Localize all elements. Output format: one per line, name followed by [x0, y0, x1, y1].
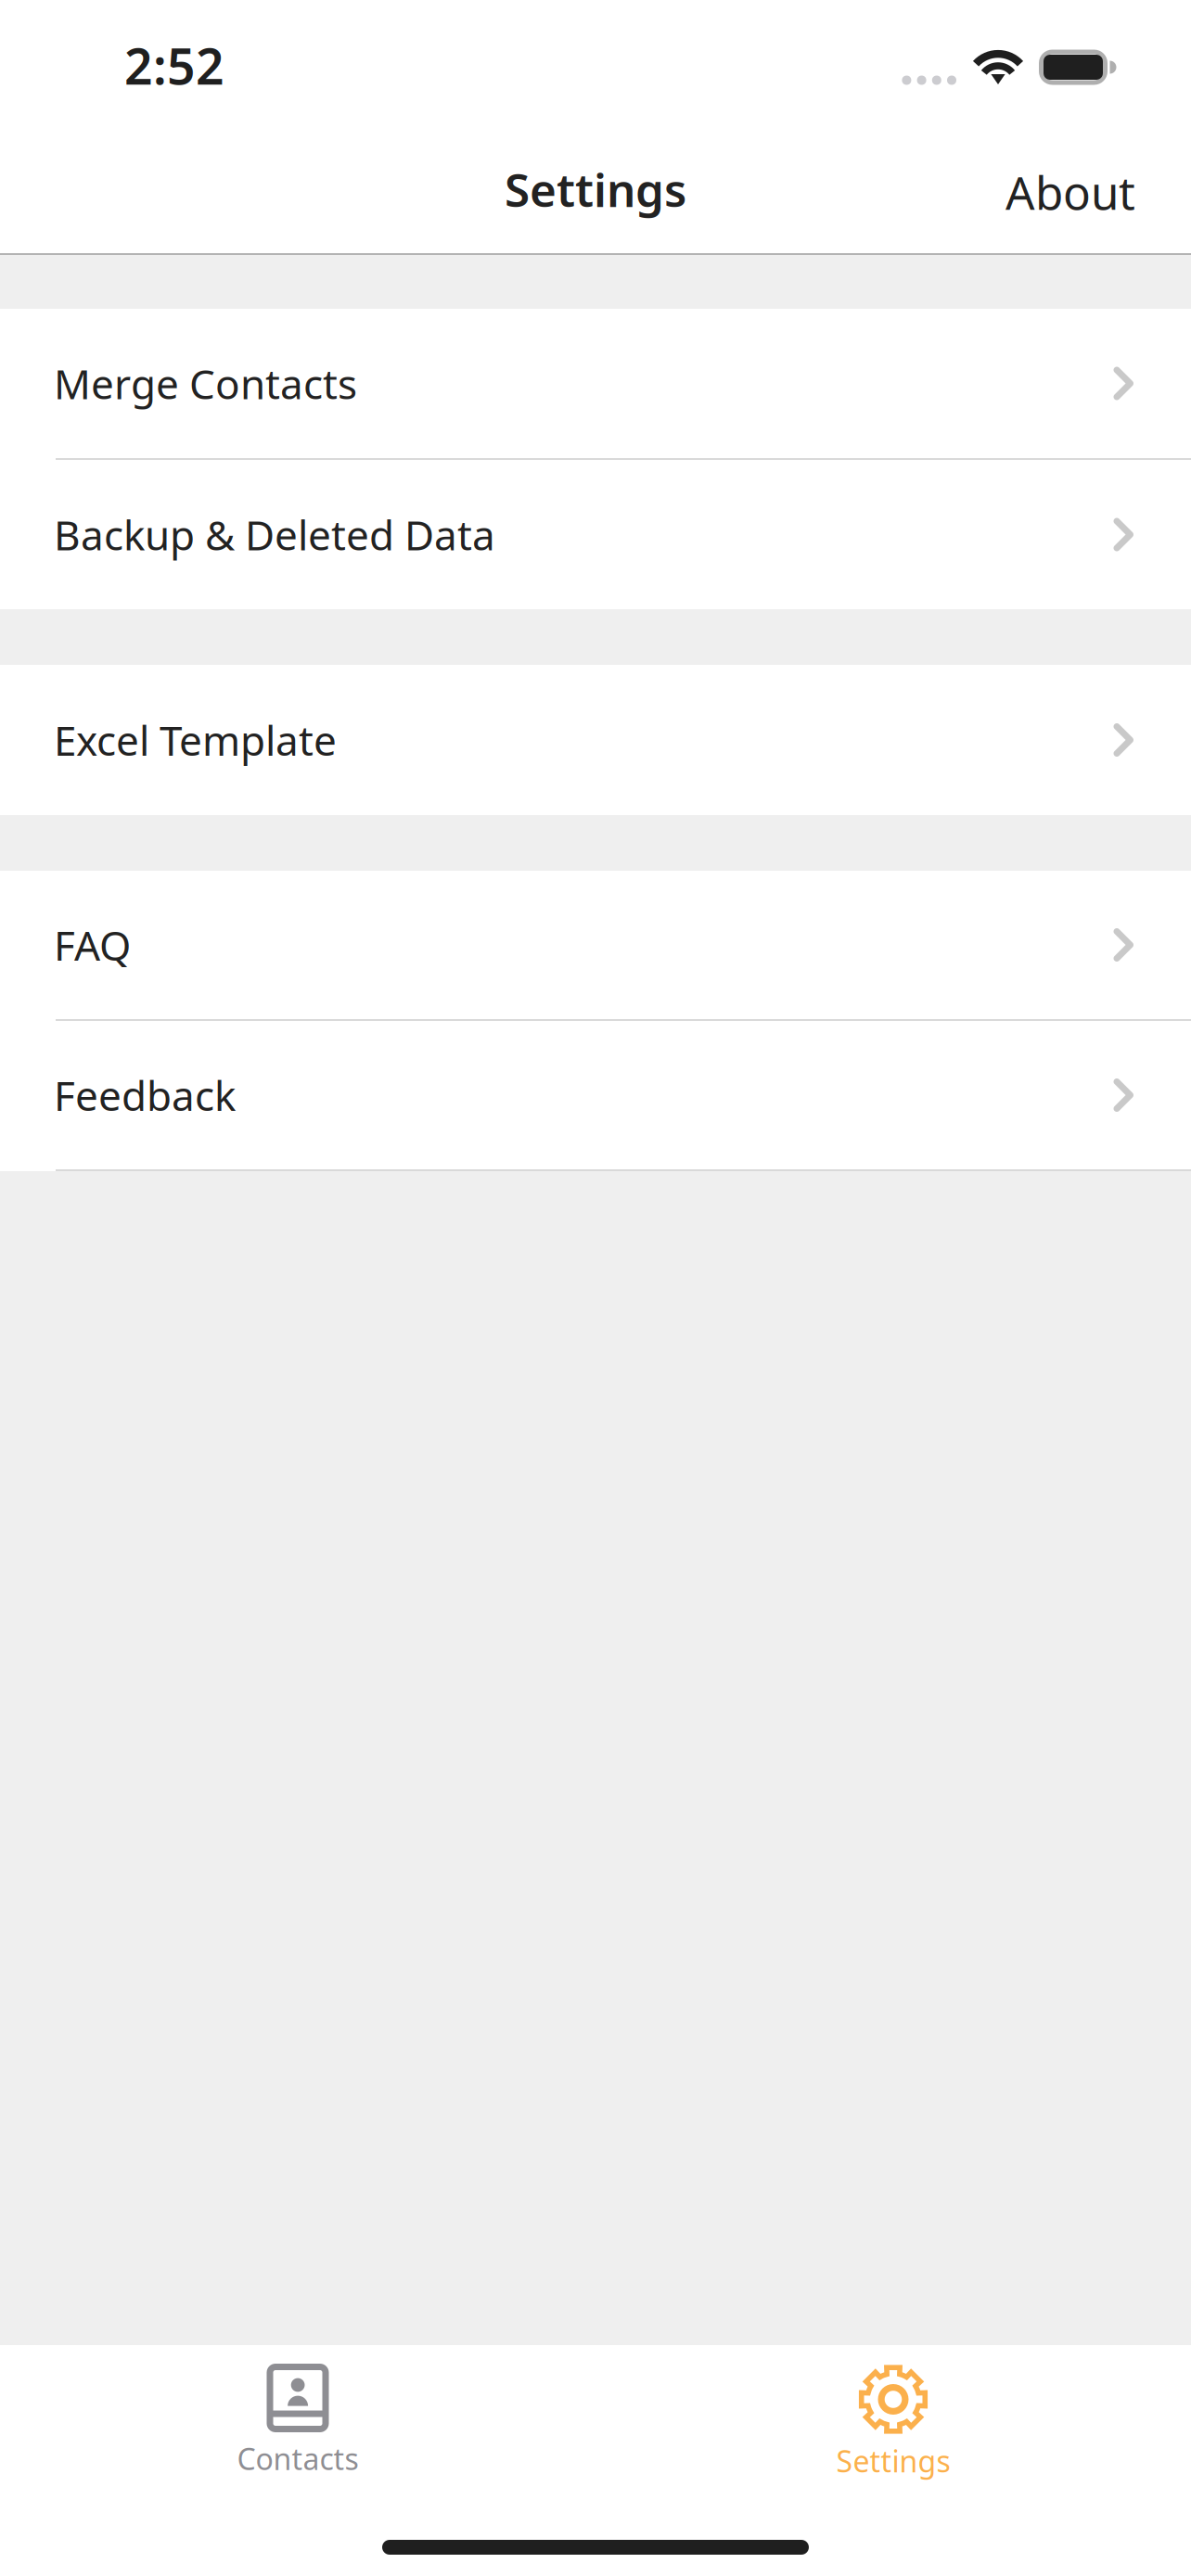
button[interactable]: Settings	[595, 2346, 1191, 2512]
button[interactable]: About	[994, 152, 1146, 232]
button[interactable]: Feedback	[0, 1021, 1191, 1169]
staticText: Feedback	[54, 1068, 236, 1122]
button[interactable]: Backup & Deleted Data	[0, 460, 1191, 609]
staticText: Excel Template	[54, 713, 337, 767]
staticText: Settings	[505, 159, 686, 219]
staticText: 2:52	[124, 33, 224, 98]
button[interactable]: FAQ	[0, 871, 1191, 1019]
staticText: Settings	[836, 2441, 950, 2480]
staticText: About	[1005, 162, 1135, 222]
staticText: Merge Contacts	[54, 356, 357, 411]
staticText: Contacts	[237, 2439, 359, 2478]
staticText: FAQ	[54, 918, 131, 972]
button[interactable]: Merge Contacts	[0, 309, 1191, 458]
staticText: Backup & Deleted Data	[54, 508, 495, 562]
button[interactable]: Excel Template	[0, 665, 1191, 815]
button[interactable]: Contacts	[0, 2345, 595, 2513]
